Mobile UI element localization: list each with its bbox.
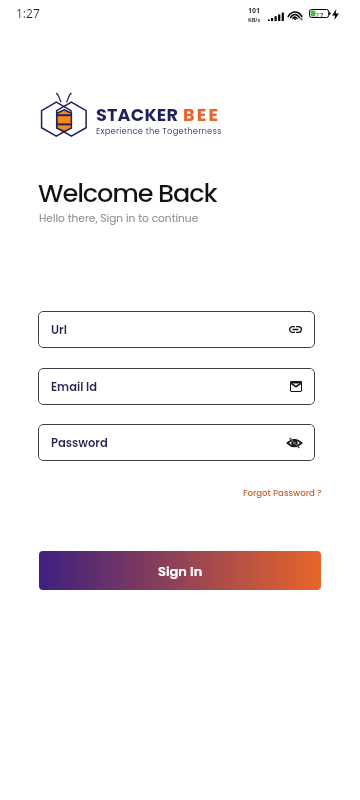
staticText: Email Id (51, 379, 98, 395)
staticText: 1:27 (16, 5, 40, 21)
staticText: Url (51, 322, 67, 338)
staticText: KB/s (248, 16, 261, 23)
staticText: 101 (248, 6, 261, 16)
staticText: Welcome Back (38, 175, 217, 211)
button[interactable]: Password (38, 424, 315, 461)
button[interactable]: Forgot Password ? (243, 487, 322, 499)
staticText: STACKER (96, 103, 179, 128)
staticText: Hello there, Sign in to continue (39, 211, 199, 226)
staticText: Experience the Togetherness (96, 125, 222, 137)
staticText: Password (51, 435, 108, 451)
staticText: 27 (315, 10, 324, 20)
button[interactable]: Url (38, 311, 315, 348)
button[interactable]: Sign In (39, 551, 321, 590)
other: Show password (287, 438, 302, 448)
staticText: BEE (183, 103, 221, 128)
other: Email (290, 381, 302, 392)
button[interactable]: Email Id (38, 368, 315, 405)
staticText: Sign In (158, 562, 203, 580)
staticText: Forgot Password ? (243, 487, 322, 499)
other: Url link (289, 326, 302, 333)
